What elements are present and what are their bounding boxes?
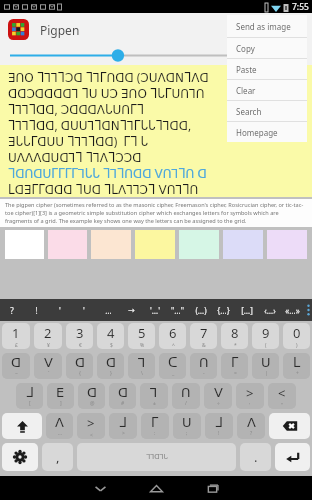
button[interactable]: More options (277, 16, 305, 44)
button[interactable]: ꓵ (190, 353, 217, 379)
button[interactable]: '…' (143, 299, 166, 321)
button[interactable]: 0 (283, 323, 310, 349)
button[interactable]: Homepage (227, 122, 307, 142)
button[interactable]: ᒥ (141, 413, 169, 439)
staticText: ! (35, 305, 38, 316)
staticText: # (121, 400, 125, 407)
button[interactable]: ᒥ (221, 353, 248, 379)
button[interactable]: ꓷ (66, 353, 93, 379)
staticText: Copy (236, 43, 255, 54)
button[interactable]: , (42, 443, 73, 471)
button[interactable]: ᒧ (109, 413, 137, 439)
button[interactable]: ꓶ (140, 383, 168, 409)
button[interactable]: ᒧ (205, 413, 233, 439)
button[interactable]: → (120, 299, 143, 321)
button[interactable]: Backspace (269, 413, 310, 439)
button[interactable]: Send as image (227, 15, 307, 37)
button[interactable]: . (240, 443, 271, 471)
button[interactable]: Back (82, 476, 118, 500)
staticText: → (128, 306, 135, 315)
staticText: ` (48, 370, 50, 377)
button[interactable]: ꓥ (46, 413, 73, 439)
button[interactable]: > (236, 383, 264, 409)
button[interactable]: ꓴ (173, 413, 201, 439)
staticText: {…} (217, 305, 230, 316)
staticText: ᑕ (168, 355, 178, 370)
button[interactable]: ᒪ (283, 353, 310, 379)
staticText: = (234, 370, 237, 377)
button[interactable]: ꓦ (204, 383, 232, 409)
button[interactable]: ꓥ (237, 413, 265, 439)
button[interactable]: Paste (227, 59, 307, 79)
button[interactable]: 2 (34, 323, 62, 349)
button[interactable]: ? (0, 299, 24, 321)
staticText: 6 (169, 324, 177, 342)
staticText: 4 (107, 324, 115, 342)
staticText: ᒧ (215, 415, 223, 430)
button[interactable]: {…} (212, 299, 235, 321)
staticText: "…" (171, 305, 184, 316)
button[interactable]: Settings (2, 443, 38, 471)
button[interactable]: ꓦ (34, 353, 62, 379)
button[interactable]: > (77, 413, 105, 439)
button[interactable]: < (268, 383, 296, 409)
staticText: " (281, 402, 284, 409)
button[interactable]: ꓰ (47, 383, 74, 409)
staticText: Paste (236, 64, 257, 75)
button[interactable]: ᑕ (159, 353, 186, 379)
button[interactable]: 7 (190, 323, 217, 349)
button[interactable]: ᒣꓶꓷꓶᒐ (77, 443, 236, 471)
button[interactable]: Home (138, 476, 174, 500)
button[interactable]: Shift (2, 413, 42, 439)
button[interactable]: ' (72, 299, 96, 321)
button[interactable]: 5 (128, 323, 155, 349)
button[interactable]: ꓶ (128, 353, 155, 379)
staticText: _ (172, 370, 175, 377)
button[interactable]: ꓵ (172, 383, 200, 409)
staticText: ᒣꓶꓶᒣꓷꓷ, ꓛꓷꓷꓷꓥᒐꓴꓵᒥᒣ (8, 101, 145, 117)
button[interactable]: ꓷ (78, 383, 105, 409)
button[interactable]: Copy (227, 38, 307, 58)
button[interactable]: "…" (166, 299, 189, 321)
button[interactable]: ꓴ (252, 353, 279, 379)
button[interactable]: 9 (252, 323, 279, 349)
button[interactable]: 4 (97, 323, 124, 349)
button[interactable]: … (96, 299, 120, 321)
staticText: £ (15, 342, 18, 349)
staticText: $ (110, 342, 113, 349)
button[interactable]: ‹…› (258, 299, 281, 321)
button[interactable]: 6 (159, 323, 186, 349)
staticText: > (122, 430, 125, 437)
button[interactable]: Clear (227, 80, 307, 100)
button[interactable]: «…» (281, 299, 304, 321)
button[interactable]: ꓷ (97, 353, 124, 379)
button[interactable]: ꓷ (109, 383, 136, 409)
button[interactable]: Search (227, 101, 307, 121)
button[interactable]: […] (235, 299, 258, 321)
button[interactable]: Enter (275, 443, 310, 471)
staticText: ' (83, 305, 85, 316)
button[interactable]: 3 (66, 323, 93, 349)
button[interactable]: Recents (194, 476, 230, 500)
button[interactable]: ! (24, 299, 48, 321)
staticText: ± (153, 400, 156, 407)
button[interactable]: (…) (189, 299, 212, 321)
button[interactable]: ' (48, 299, 72, 321)
staticText: The pigpen cipher (sometimes referred to… (5, 201, 307, 225)
button[interactable]: 1 (2, 323, 30, 349)
staticText: ᒥ (151, 415, 159, 430)
staticText: ] (60, 400, 62, 407)
staticText: € (79, 342, 82, 349)
button[interactable]: 8 (221, 323, 248, 349)
staticText: ꓱᒐᒐᒥꓷꓴꓴ ᒣꓶꓶᒣꓷꓷ) ᒥᒣ ᒐ (8, 133, 149, 149)
button[interactable]: ꓷ (2, 353, 30, 379)
button[interactable]: ᒧ (16, 383, 43, 409)
staticText: ꓷ (87, 385, 97, 400)
